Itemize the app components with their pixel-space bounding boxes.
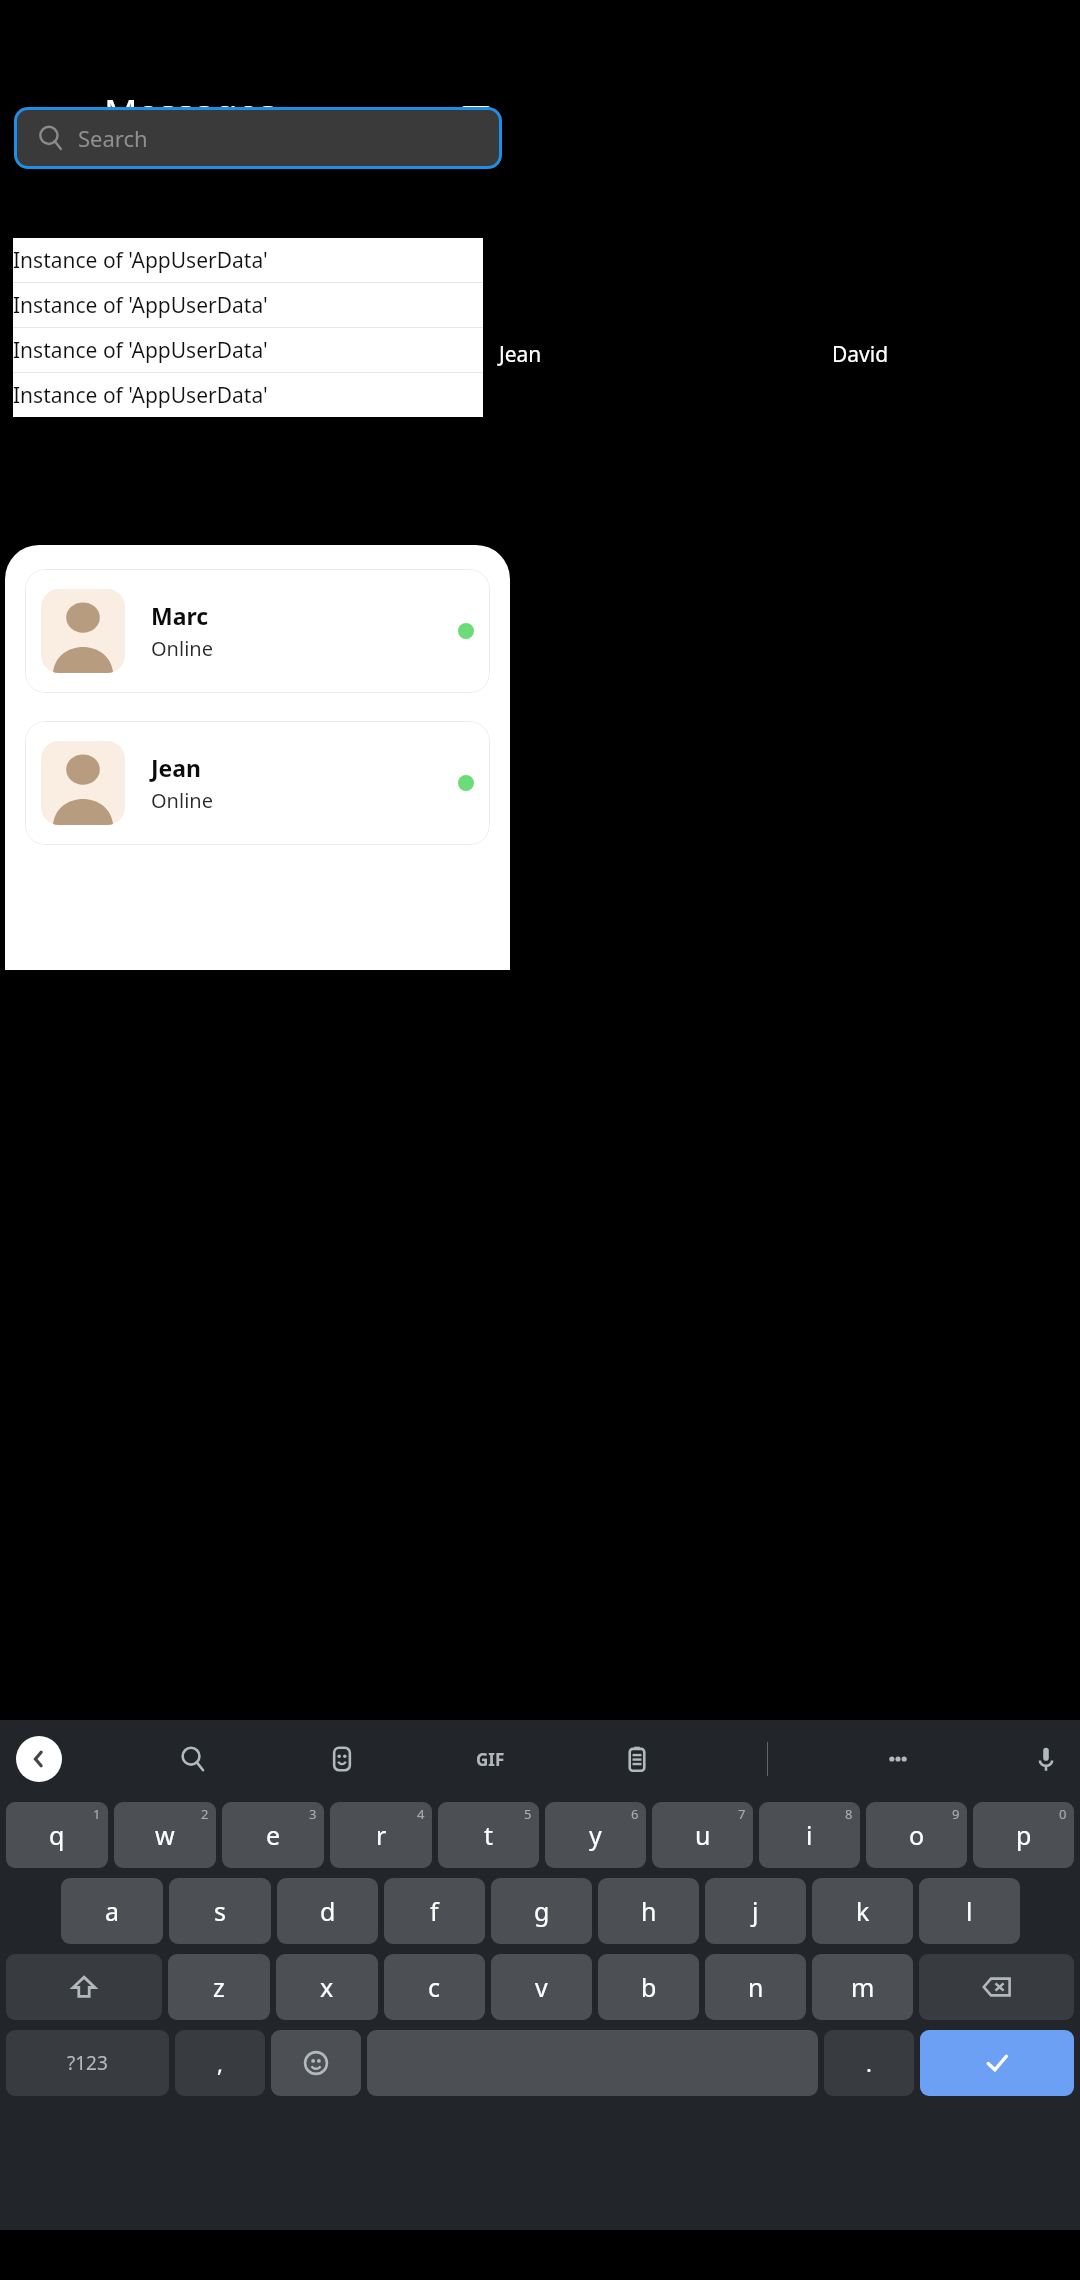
button[interactable]: ?123: [6, 2030, 169, 2096]
button[interactable]: u: [652, 1802, 753, 1868]
button[interactable]: o: [866, 1802, 967, 1868]
staticText: Instance of 'AppUserData': [13, 291, 268, 320]
staticText: k: [856, 1894, 870, 1928]
staticText: x: [320, 1970, 334, 2004]
staticText: Instance of 'AppUserData': [13, 381, 268, 410]
button[interactable]: e: [222, 1802, 324, 1868]
staticText: Jean: [151, 752, 202, 783]
staticText: 4: [417, 1805, 425, 1823]
button[interactable]: Instance of 'AppUserData': [13, 238, 483, 282]
staticText: p: [1016, 1818, 1032, 1852]
staticText: w: [155, 1818, 175, 1852]
button[interactable]: d: [277, 1878, 378, 1944]
staticText: j: [752, 1894, 759, 1928]
button[interactable]: i: [759, 1802, 860, 1868]
staticText: i: [806, 1818, 813, 1852]
button[interactable]: f: [384, 1878, 485, 1944]
staticText: m: [851, 1970, 875, 2004]
staticText: v: [535, 1970, 548, 2004]
staticText: Marc: [155, 340, 205, 369]
staticText: ,: [217, 2048, 223, 2078]
staticText: Marc: [151, 600, 209, 631]
button[interactable]: Jean: [25, 721, 490, 845]
staticText: y: [589, 1818, 602, 1852]
button[interactable]: Instance of 'AppUserData': [13, 373, 483, 417]
staticText: 5: [524, 1805, 532, 1823]
button[interactable]: p: [973, 1802, 1074, 1868]
staticText: 7: [738, 1805, 746, 1823]
staticText: Instance of 'AppUserData': [13, 336, 268, 365]
button[interactable]: w: [114, 1802, 216, 1868]
button[interactable]: .: [824, 2030, 914, 2096]
button[interactable]: New message: [460, 106, 492, 138]
button[interactable]: a: [61, 1878, 163, 1944]
button[interactable]: Enter: [920, 2030, 1074, 2096]
staticText: o: [909, 1818, 925, 1852]
staticText: b: [641, 1970, 657, 2004]
staticText: q: [49, 1818, 65, 1852]
staticText: g: [534, 1894, 550, 1928]
staticText: 0: [1059, 1805, 1067, 1823]
button[interactable]: GIF: [473, 1742, 507, 1776]
button[interactable]: Search: [14, 107, 502, 169]
button[interactable]: Voice input: [1028, 1741, 1064, 1777]
button[interactable]: t: [438, 1802, 539, 1868]
staticText: t: [484, 1818, 494, 1852]
button[interactable]: Instance of 'AppUserData': [13, 328, 483, 372]
staticText: e: [266, 1818, 281, 1852]
button[interactable]: h: [598, 1878, 699, 1944]
staticText: h: [641, 1894, 657, 1928]
button[interactable]: Stickers: [324, 1741, 360, 1777]
staticText: 2: [201, 1805, 209, 1823]
staticText: GIF: [476, 1748, 505, 1771]
staticText: 8: [845, 1805, 853, 1823]
button[interactable]: Menu: [30, 108, 82, 160]
staticText: Search: [78, 123, 148, 153]
staticText: Messages: [104, 86, 276, 136]
staticText: 6: [631, 1805, 639, 1823]
staticText: ?123: [67, 2050, 108, 2076]
staticText: Instance of 'AppUserData': [13, 246, 268, 275]
staticText: r: [376, 1818, 387, 1852]
button[interactable]: Marc: [25, 569, 490, 693]
button[interactable]: ,: [175, 2030, 265, 2096]
staticText: s: [214, 1894, 226, 1928]
button[interactable]: Shift: [6, 1954, 162, 2020]
button[interactable]: k: [812, 1878, 913, 1944]
staticText: Online: [151, 635, 213, 662]
staticText: David: [832, 340, 889, 369]
button[interactable]: g: [491, 1878, 592, 1944]
staticText: u: [695, 1818, 711, 1852]
button[interactable]: v: [491, 1954, 592, 2020]
staticText: n: [748, 1970, 764, 2004]
button[interactable]: Back: [16, 1736, 62, 1782]
button[interactable]: Instance of 'AppUserData': [13, 283, 483, 327]
button[interactable]: l: [919, 1878, 1020, 1944]
staticText: d: [320, 1894, 336, 1928]
button[interactable]: Emoji: [271, 2030, 361, 2096]
staticText: a: [105, 1894, 120, 1928]
staticText: z: [213, 1970, 225, 2004]
button[interactable]: Clipboard: [619, 1741, 655, 1777]
button[interactable]: q: [6, 1802, 108, 1868]
staticText: .: [866, 2048, 872, 2078]
staticText: 1: [93, 1805, 101, 1823]
button[interactable]: s: [169, 1878, 271, 1944]
button[interactable]: Backspace: [919, 1954, 1074, 2020]
button[interactable]: n: [705, 1954, 806, 2020]
staticText: Jean: [499, 340, 542, 369]
button[interactable]: b: [598, 1954, 699, 2020]
button[interactable]: Search: [175, 1741, 211, 1777]
button[interactable]: m: [812, 1954, 913, 2020]
button[interactable]: More: [880, 1741, 916, 1777]
button[interactable]: r: [330, 1802, 432, 1868]
button[interactable]: y: [545, 1802, 646, 1868]
button[interactable]: c: [384, 1954, 485, 2020]
staticText: c: [428, 1970, 441, 2004]
staticText: f: [430, 1894, 439, 1928]
staticText: l: [966, 1894, 973, 1928]
button[interactable]: z: [168, 1954, 270, 2020]
button[interactable]: j: [705, 1878, 806, 1944]
button[interactable]: x: [276, 1954, 378, 2020]
